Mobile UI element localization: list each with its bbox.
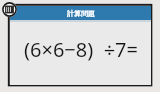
staticText: (6×6−8) ÷7= [24,36,138,63]
staticText: 計算問題 [67,9,95,18]
button[interactable]: (6×6−8) ÷7= [10,22,151,85]
button[interactable]: 計算問題 [10,6,151,20]
button[interactable]: App icon [2,2,17,17]
